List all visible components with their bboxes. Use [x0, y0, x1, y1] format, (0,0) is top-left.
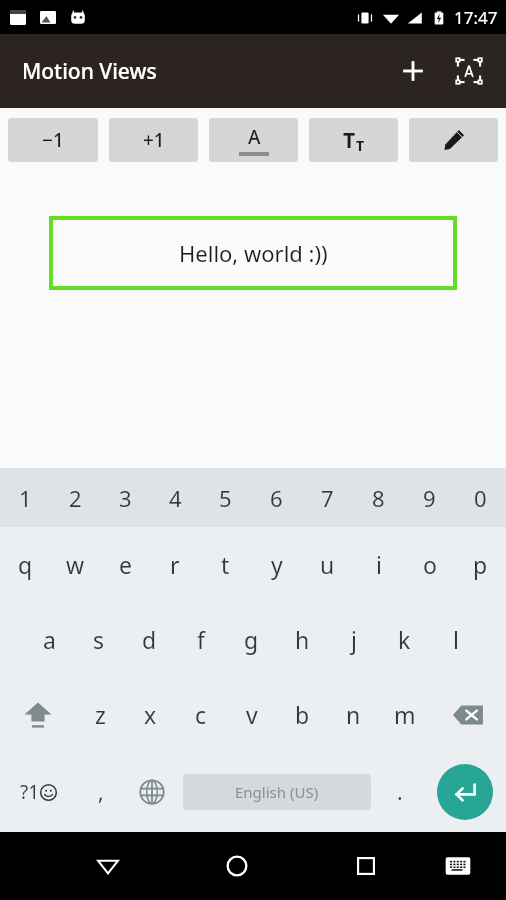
- staticText: 4: [169, 483, 182, 513]
- button[interactable]: Hello, world :)): [49, 216, 457, 290]
- button[interactable]: Change language: [125, 752, 179, 832]
- staticText: x: [144, 699, 157, 730]
- staticText: −1: [42, 127, 64, 153]
- button[interactable]: Backspace: [430, 677, 506, 752]
- button[interactable]: Add: [390, 48, 436, 94]
- staticText: f: [197, 624, 205, 655]
- staticText: 7: [321, 483, 334, 513]
- staticText: 2: [69, 483, 82, 513]
- button[interactable]: i: [353, 527, 404, 602]
- button[interactable]: p: [455, 527, 506, 602]
- button[interactable]: −1: [8, 118, 98, 162]
- staticText: a: [43, 624, 56, 655]
- staticText: p: [473, 549, 488, 580]
- staticText: o: [423, 549, 437, 580]
- button[interactable]: 1: [0, 468, 50, 527]
- button[interactable]: m: [379, 677, 430, 752]
- button[interactable]: t: [200, 527, 251, 602]
- staticText: 9: [423, 483, 436, 513]
- staticText: h: [295, 624, 310, 655]
- staticText: m: [394, 699, 416, 730]
- button[interactable]: English (US): [183, 774, 371, 810]
- staticText: q: [18, 549, 33, 580]
- button[interactable]: g: [226, 602, 277, 677]
- staticText: z: [95, 699, 106, 730]
- staticText: g: [244, 624, 259, 655]
- button[interactable]: 5: [200, 468, 251, 527]
- button[interactable]: x: [125, 677, 175, 752]
- staticText: i: [376, 549, 382, 580]
- button[interactable]: w: [50, 527, 100, 602]
- button[interactable]: y: [251, 527, 302, 602]
- staticText: l: [453, 624, 459, 655]
- button[interactable]: 0: [455, 468, 506, 527]
- staticText: t: [221, 549, 230, 580]
- button[interactable]: 9: [404, 468, 455, 527]
- button[interactable]: j: [328, 602, 379, 677]
- button[interactable]: f: [175, 602, 226, 677]
- staticText: j: [351, 624, 357, 655]
- staticText: 5: [219, 483, 232, 513]
- button[interactable]: Recents: [332, 832, 400, 900]
- staticText: r: [170, 549, 180, 580]
- staticText: d: [142, 624, 157, 655]
- staticText: n: [346, 699, 361, 730]
- button[interactable]: h: [277, 602, 328, 677]
- button[interactable]: 6: [251, 468, 302, 527]
- staticText: y: [271, 549, 283, 580]
- other: Edit: [442, 128, 466, 152]
- staticText: u: [320, 549, 335, 580]
- button[interactable]: n: [328, 677, 379, 752]
- staticText: 8: [372, 483, 385, 513]
- button[interactable]: Back: [74, 832, 142, 900]
- button[interactable]: k: [379, 602, 430, 677]
- button[interactable]: +1: [109, 118, 198, 162]
- button[interactable]: 2: [50, 468, 100, 527]
- staticText: A: [248, 124, 261, 150]
- staticText: ,: [98, 778, 104, 807]
- button[interactable]: ?1: [0, 752, 76, 832]
- button[interactable]: 7: [302, 468, 353, 527]
- button[interactable]: r: [150, 527, 200, 602]
- staticText: T: [343, 126, 356, 155]
- button[interactable]: s: [74, 602, 124, 677]
- button[interactable]: v: [226, 677, 277, 752]
- button[interactable]: q: [0, 527, 50, 602]
- button[interactable]: d: [124, 602, 175, 677]
- button[interactable]: Home: [203, 832, 271, 900]
- staticText: 3: [119, 483, 132, 513]
- staticText: English (US): [235, 782, 319, 802]
- staticText: +1: [143, 127, 165, 153]
- staticText: c: [195, 699, 207, 730]
- button[interactable]: A: [209, 118, 298, 162]
- button[interactable]: 8: [353, 468, 404, 527]
- staticText: 17:47: [454, 6, 498, 29]
- staticText: 0: [474, 483, 487, 513]
- button[interactable]: c: [175, 677, 226, 752]
- staticText: Hello, world :)): [179, 238, 328, 268]
- button[interactable]: 4: [150, 468, 200, 527]
- button[interactable]: u: [302, 527, 353, 602]
- staticText: 1: [19, 483, 32, 513]
- button[interactable]: Enter: [437, 764, 493, 820]
- button[interactable]: Switch keyboard: [424, 832, 492, 900]
- button[interactable]: Shift: [0, 677, 75, 752]
- staticText: Motion Views: [22, 57, 157, 86]
- staticText: ?1: [20, 779, 40, 805]
- button[interactable]: o: [404, 527, 455, 602]
- staticText: e: [119, 549, 132, 580]
- button[interactable]: b: [277, 677, 328, 752]
- button[interactable]: 3: [100, 468, 150, 527]
- staticText: T: [356, 136, 365, 155]
- button[interactable]: l: [430, 602, 481, 677]
- button[interactable]: ,: [76, 752, 125, 832]
- button[interactable]: e: [100, 527, 150, 602]
- staticText: s: [93, 624, 105, 655]
- staticText: .: [397, 778, 403, 807]
- button[interactable]: Text tool: [446, 48, 492, 94]
- button[interactable]: z: [75, 677, 125, 752]
- button[interactable]: a: [24, 602, 74, 677]
- button[interactable]: T: [309, 118, 398, 162]
- button[interactable]: Edit: [409, 118, 498, 162]
- button[interactable]: .: [375, 752, 424, 832]
